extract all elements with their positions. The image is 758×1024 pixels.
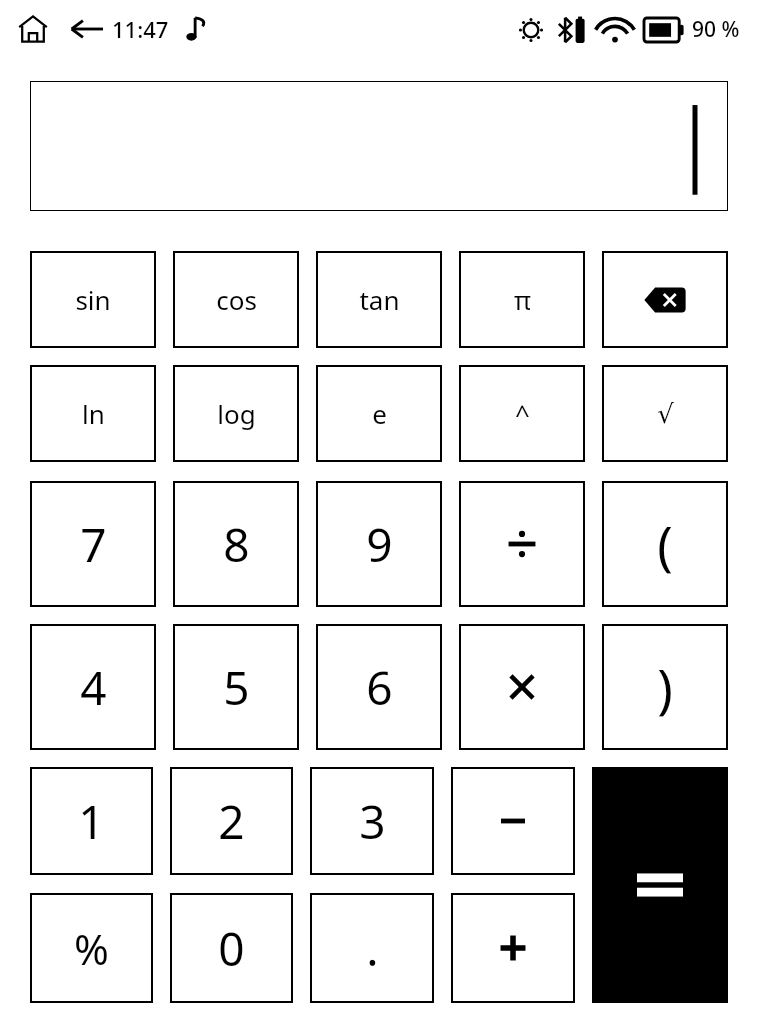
button[interactable]: log	[173, 365, 299, 462]
staticText: 0	[218, 917, 245, 980]
button[interactable]	[30, 81, 728, 211]
staticText: %	[74, 920, 109, 977]
staticText: log	[217, 396, 256, 431]
button[interactable]: Multiply	[459, 624, 585, 750]
staticText: √	[657, 399, 674, 429]
button[interactable]: Divide	[459, 481, 585, 607]
staticText: 4	[80, 656, 107, 719]
button[interactable]: √	[602, 365, 728, 462]
staticText: 5	[223, 656, 250, 719]
staticText: tan	[359, 282, 400, 317]
button[interactable]: cos	[173, 251, 299, 348]
button[interactable]: e	[316, 365, 442, 462]
button[interactable]: 4	[30, 624, 156, 750]
other: Home	[18, 14, 48, 44]
staticText: 6	[366, 656, 393, 719]
button[interactable]: Plus	[451, 893, 575, 1003]
button[interactable]: tan	[316, 251, 442, 348]
other: Back	[70, 16, 104, 42]
button[interactable]: 2	[170, 767, 293, 875]
staticText: 90 %	[692, 15, 740, 44]
button[interactable]: sin	[30, 251, 156, 348]
button[interactable]: 7	[30, 481, 156, 607]
button[interactable]: 9	[316, 481, 442, 607]
staticText: 9	[366, 513, 393, 576]
staticText: 1	[78, 790, 105, 853]
staticText: sin	[75, 282, 111, 317]
staticText: (	[657, 509, 673, 580]
staticText: 7	[80, 513, 107, 576]
button[interactable]: %	[30, 893, 153, 1003]
button[interactable]: 5	[173, 624, 299, 750]
staticText: e	[372, 396, 387, 431]
button[interactable]: (	[602, 481, 728, 607]
other: Music	[185, 15, 207, 43]
button[interactable]: Equals	[592, 767, 728, 1003]
staticText: 2	[218, 790, 245, 853]
button[interactable]: .	[310, 893, 434, 1003]
button[interactable]: )	[602, 624, 728, 750]
staticText: 3	[359, 790, 386, 853]
staticText: 8	[223, 513, 250, 576]
staticText: 11:47	[112, 14, 169, 44]
button[interactable]: π	[459, 251, 585, 348]
staticText: ln	[82, 396, 105, 431]
staticText: π	[514, 282, 531, 317]
button[interactable]: 1	[30, 767, 153, 875]
staticText: cos	[216, 282, 257, 317]
button[interactable]: Backspace	[602, 251, 728, 348]
button[interactable]: 8	[173, 481, 299, 607]
staticText: .	[366, 917, 379, 980]
button[interactable]: ^	[459, 365, 585, 462]
button[interactable]: 3	[310, 767, 434, 875]
staticText: ^	[515, 396, 530, 431]
button[interactable]: Minus	[451, 767, 575, 875]
button[interactable]: 6	[316, 624, 442, 750]
button[interactable]: 0	[170, 893, 293, 1003]
button[interactable]: ln	[30, 365, 156, 462]
staticText: )	[657, 652, 673, 723]
